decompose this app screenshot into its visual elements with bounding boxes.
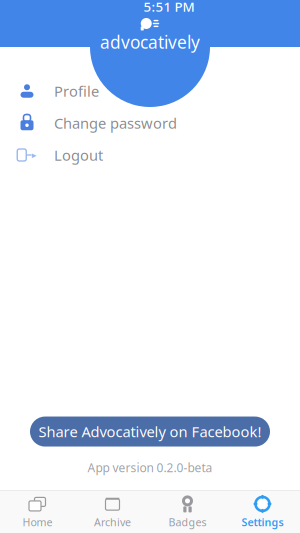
staticText: Logout: [54, 145, 103, 165]
staticText: Change password: [54, 113, 177, 133]
staticText: Share Advocatively on Facebook!: [38, 422, 261, 441]
button[interactable]: ▸: [0, 139, 300, 171]
staticText: Home: [22, 515, 52, 529]
button[interactable]: Badges: [150, 491, 225, 533]
staticText: Profile: [54, 81, 99, 101]
button[interactable]: Profile: [0, 75, 300, 107]
button[interactable]: Settings: [225, 491, 300, 533]
staticText: Archive: [94, 515, 131, 529]
button[interactable]: Change password: [0, 107, 300, 139]
staticText: ▸: [32, 150, 37, 160]
staticText: Badges: [168, 515, 206, 529]
button[interactable]: Share Advocatively on Facebook!: [30, 417, 270, 447]
staticText: 5:51 PM: [143, 0, 194, 15]
staticText: advocatively: [100, 30, 200, 53]
button[interactable]: Archive: [75, 491, 150, 533]
staticText: App version 0.2.0-beta: [87, 460, 212, 475]
staticText: Settings: [241, 515, 283, 529]
button[interactable]: Home: [0, 491, 75, 533]
